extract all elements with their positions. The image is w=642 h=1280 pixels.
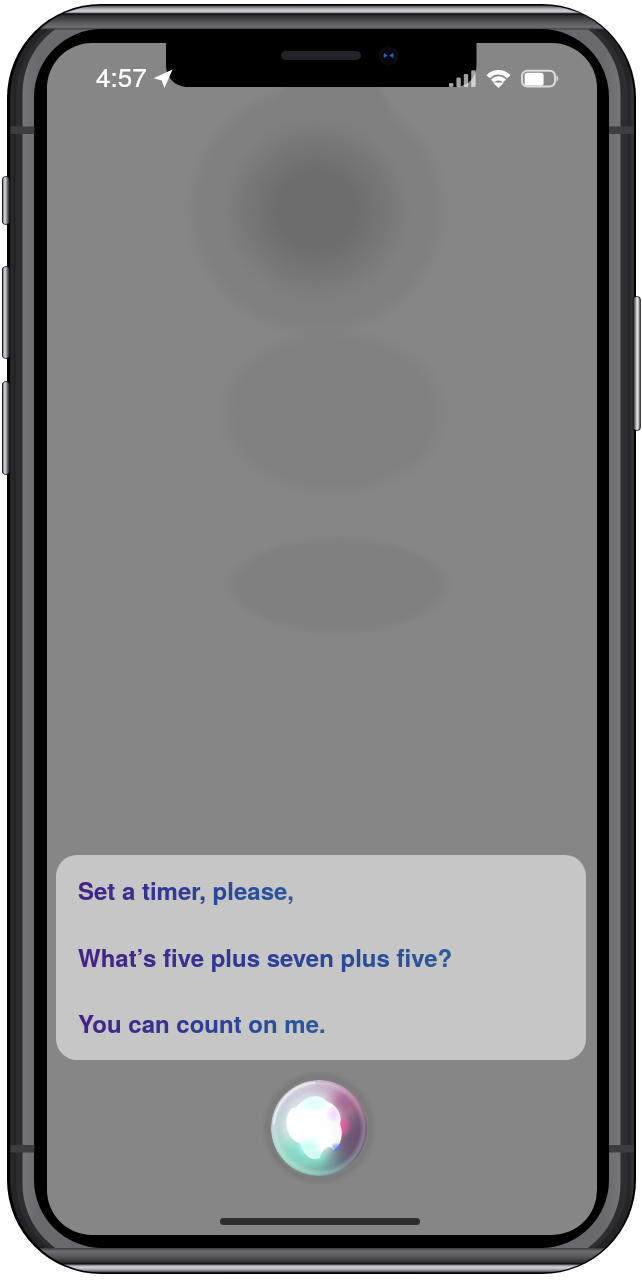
staticText: Set a timer, please, xyxy=(78,873,294,907)
button[interactable]: Siri listening xyxy=(271,1080,367,1176)
staticText: 4:57 xyxy=(96,57,147,94)
staticText: You can count on me. xyxy=(78,1006,326,1040)
button[interactable]: Set a timer, please, xyxy=(56,855,586,1060)
staticText: What’s five plus seven plus five? xyxy=(78,940,453,974)
